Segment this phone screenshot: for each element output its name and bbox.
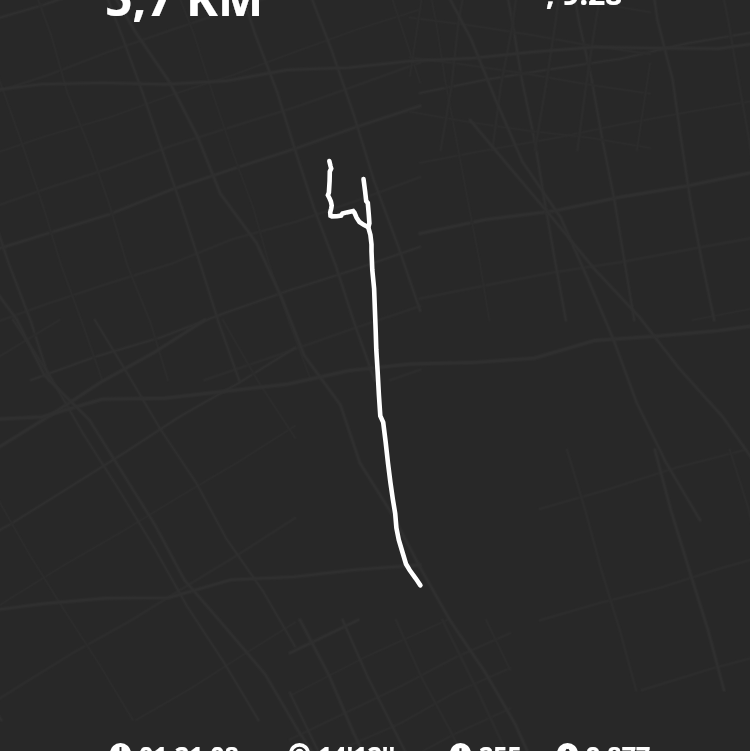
staticText: 14'12'' — [318, 738, 396, 751]
staticText: 255 — [479, 738, 522, 751]
button[interactable]: Calories — [450, 743, 522, 751]
staticText: , 9:28 — [546, 0, 623, 14]
button[interactable]: Steps — [557, 743, 651, 751]
staticText: 5,7 KM — [105, 0, 264, 30]
staticText: 9.877 — [586, 738, 651, 751]
button[interactable]: Pace — [289, 743, 396, 751]
button[interactable]: Duration — [110, 743, 239, 751]
staticText: 01:21:08 — [139, 738, 239, 751]
